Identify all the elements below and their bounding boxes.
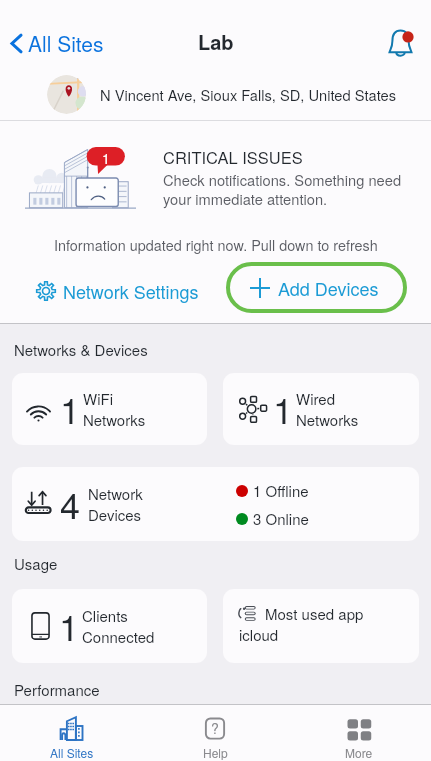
- staticText: Usage: [14, 553, 58, 574]
- staticText: Clients: [82, 605, 128, 626]
- staticText: 1: [102, 148, 110, 168]
- staticText: 1: [60, 383, 81, 435]
- staticText: ?: [211, 718, 219, 738]
- button[interactable]: 1: [223, 373, 419, 445]
- staticText: Help: [203, 744, 228, 761]
- staticText: Network: [88, 483, 143, 504]
- staticText: More: [345, 744, 373, 761]
- staticText: Lab: [198, 27, 234, 68]
- staticText: 1: [273, 383, 294, 435]
- staticText: Network Settings: [63, 278, 199, 304]
- button[interactable]: Add Devices: [250, 262, 379, 313]
- staticText: Information updated right now. Pull down…: [54, 234, 378, 255]
- staticText: Networks: [83, 409, 146, 430]
- staticText: Check notifications. Something need your…: [163, 169, 402, 209]
- staticText: Networks: [296, 409, 359, 430]
- staticText: icloud: [239, 624, 279, 645]
- staticText: Devices: [88, 504, 142, 525]
- staticText: 3 Online: [253, 508, 309, 529]
- button[interactable]: Most used app: [223, 589, 419, 663]
- staticText: Connected: [82, 626, 155, 647]
- staticText: 1 Offline: [253, 480, 309, 501]
- button[interactable]: All Sites: [10, 18, 104, 68]
- staticText: All Sites: [28, 28, 104, 58]
- staticText: Add Devices: [278, 275, 379, 301]
- staticText: All Sites: [50, 744, 94, 761]
- staticText: Networks & Devices: [14, 339, 148, 360]
- staticText: Wired: [296, 388, 336, 409]
- staticText: 4: [60, 478, 81, 530]
- staticText: N Vincent Ave, Sioux Falls, SD, United S…: [100, 84, 397, 105]
- button[interactable]: 1: [12, 373, 207, 445]
- button[interactable]: Notifications: [375, 18, 425, 68]
- staticText: 1: [59, 600, 80, 652]
- staticText: WiFi: [83, 388, 113, 409]
- button[interactable]: ?: [143, 705, 287, 761]
- staticText: Performance: [14, 679, 100, 700]
- button[interactable]: More: [287, 705, 431, 761]
- staticText: Most used app: [265, 603, 364, 624]
- button[interactable]: All Sites: [0, 705, 143, 761]
- button[interactable]: 4: [12, 467, 419, 541]
- button[interactable]: Network Settings: [36, 266, 199, 316]
- button[interactable]: N Vincent Ave, Sioux Falls, SD, United S…: [0, 69, 431, 120]
- button[interactable]: 1: [12, 589, 207, 663]
- staticText: CRITICAL ISSUES: [163, 145, 303, 169]
